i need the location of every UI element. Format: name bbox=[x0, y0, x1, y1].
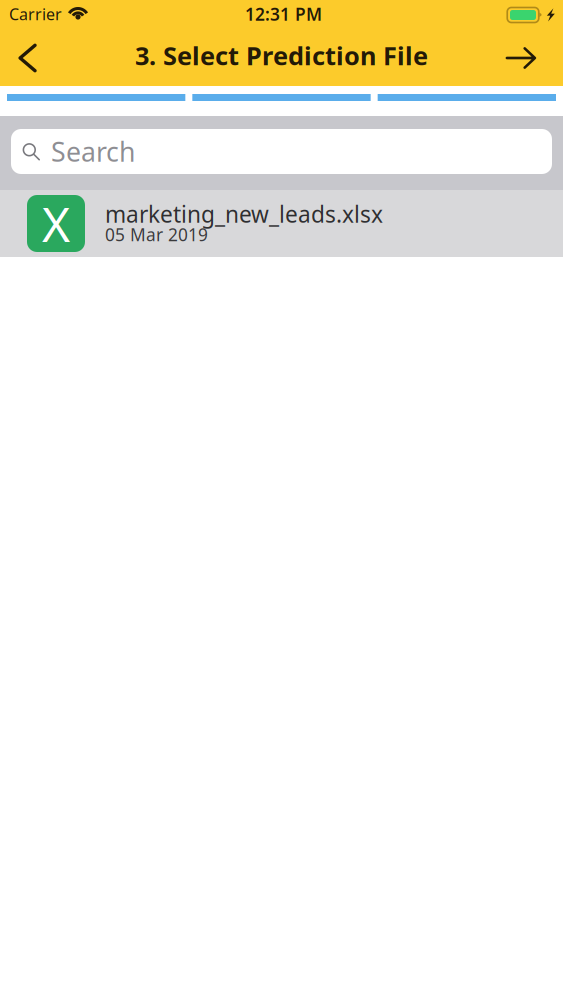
staticText: Carrier bbox=[9, 3, 62, 25]
staticText: X bbox=[42, 192, 70, 255]
staticText: Search bbox=[51, 134, 135, 169]
staticText: 3. Select Prediction File bbox=[135, 39, 428, 72]
staticText: marketing_new_leads.xlsx bbox=[105, 199, 383, 229]
staticText: 12:31 PM bbox=[245, 2, 322, 25]
button[interactable]: Back bbox=[5, 30, 51, 86]
button[interactable]: X bbox=[0, 190, 563, 257]
button[interactable]: Next step bbox=[498, 30, 544, 86]
button[interactable]: Search bbox=[11, 129, 552, 174]
staticText: 05 Mar 2019 bbox=[105, 223, 208, 246]
